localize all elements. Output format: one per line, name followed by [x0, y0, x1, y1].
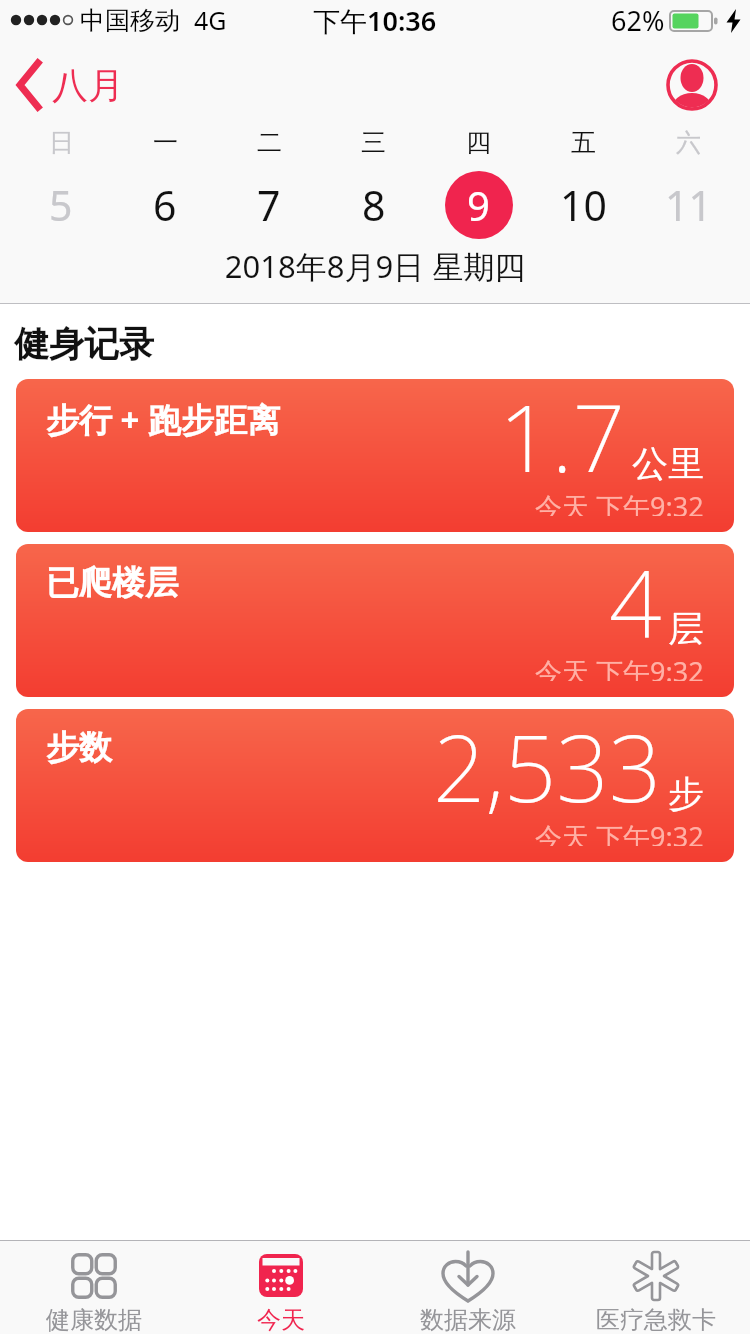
- staticText: 步行 + 跑步距离: [46, 397, 281, 442]
- staticText: 下午10:36: [313, 2, 437, 39]
- button[interactable]: 7: [217, 171, 321, 239]
- button[interactable]: 9: [426, 171, 531, 239]
- staticText: 八月: [52, 63, 124, 108]
- button[interactable]: 10: [531, 171, 636, 239]
- staticText: 六: [676, 127, 701, 158]
- staticText: 中国移动: [80, 5, 180, 36]
- button[interactable]: 8: [321, 171, 426, 239]
- staticText: 医疗急救卡: [596, 1305, 716, 1334]
- staticText: 4G: [194, 3, 227, 37]
- staticText: 2018年8月9日 星期四: [0, 245, 750, 287]
- staticText: 已爬楼层: [46, 562, 178, 604]
- button[interactable]: 医疗急救卡: [562, 1241, 750, 1334]
- button[interactable]: 步行 + 跑步距离: [16, 379, 734, 532]
- staticText: 8: [362, 177, 386, 233]
- staticText: 2,533: [433, 709, 662, 829]
- staticText: 4: [609, 544, 662, 664]
- staticText: 5: [49, 177, 73, 233]
- staticText: 健身记录: [14, 322, 154, 366]
- button[interactable]: 八月: [16, 61, 124, 109]
- staticText: 四: [466, 127, 491, 158]
- staticText: 层: [668, 606, 704, 651]
- button[interactable]: 11: [636, 171, 741, 239]
- staticText: 步数: [46, 727, 112, 769]
- staticText: 今天: [257, 1305, 305, 1334]
- staticText: 公里: [632, 441, 704, 486]
- staticText: 11: [665, 177, 712, 233]
- staticText: 日: [49, 127, 74, 158]
- button[interactable]: 健康数据: [0, 1241, 187, 1334]
- staticText: 1.7: [499, 379, 626, 499]
- staticText: 今天 下午9:32: [535, 488, 704, 516]
- staticText: 今天 下午9:32: [535, 818, 704, 846]
- staticText: 10: [560, 177, 607, 233]
- staticText: 一: [153, 127, 178, 158]
- staticText: 数据来源: [420, 1305, 516, 1334]
- staticText: 7: [257, 177, 281, 233]
- staticText: 健康数据: [46, 1305, 142, 1334]
- button[interactable]: 已爬楼层: [16, 544, 734, 697]
- staticText: 今天 下午9:32: [535, 653, 704, 681]
- staticText: 二: [257, 127, 282, 158]
- button[interactable]: 5: [9, 171, 113, 239]
- button[interactable]: [666, 59, 718, 111]
- button[interactable]: 数据来源: [374, 1241, 562, 1334]
- button[interactable]: 今天: [187, 1241, 374, 1334]
- staticText: 五: [571, 127, 596, 158]
- staticText: 9: [467, 178, 490, 232]
- staticText: 步: [668, 771, 704, 816]
- staticText: 62%: [611, 2, 665, 39]
- button[interactable]: 步数: [16, 709, 734, 862]
- staticText: 6: [153, 177, 177, 233]
- button[interactable]: 6: [113, 171, 217, 239]
- staticText: 三: [361, 127, 386, 158]
